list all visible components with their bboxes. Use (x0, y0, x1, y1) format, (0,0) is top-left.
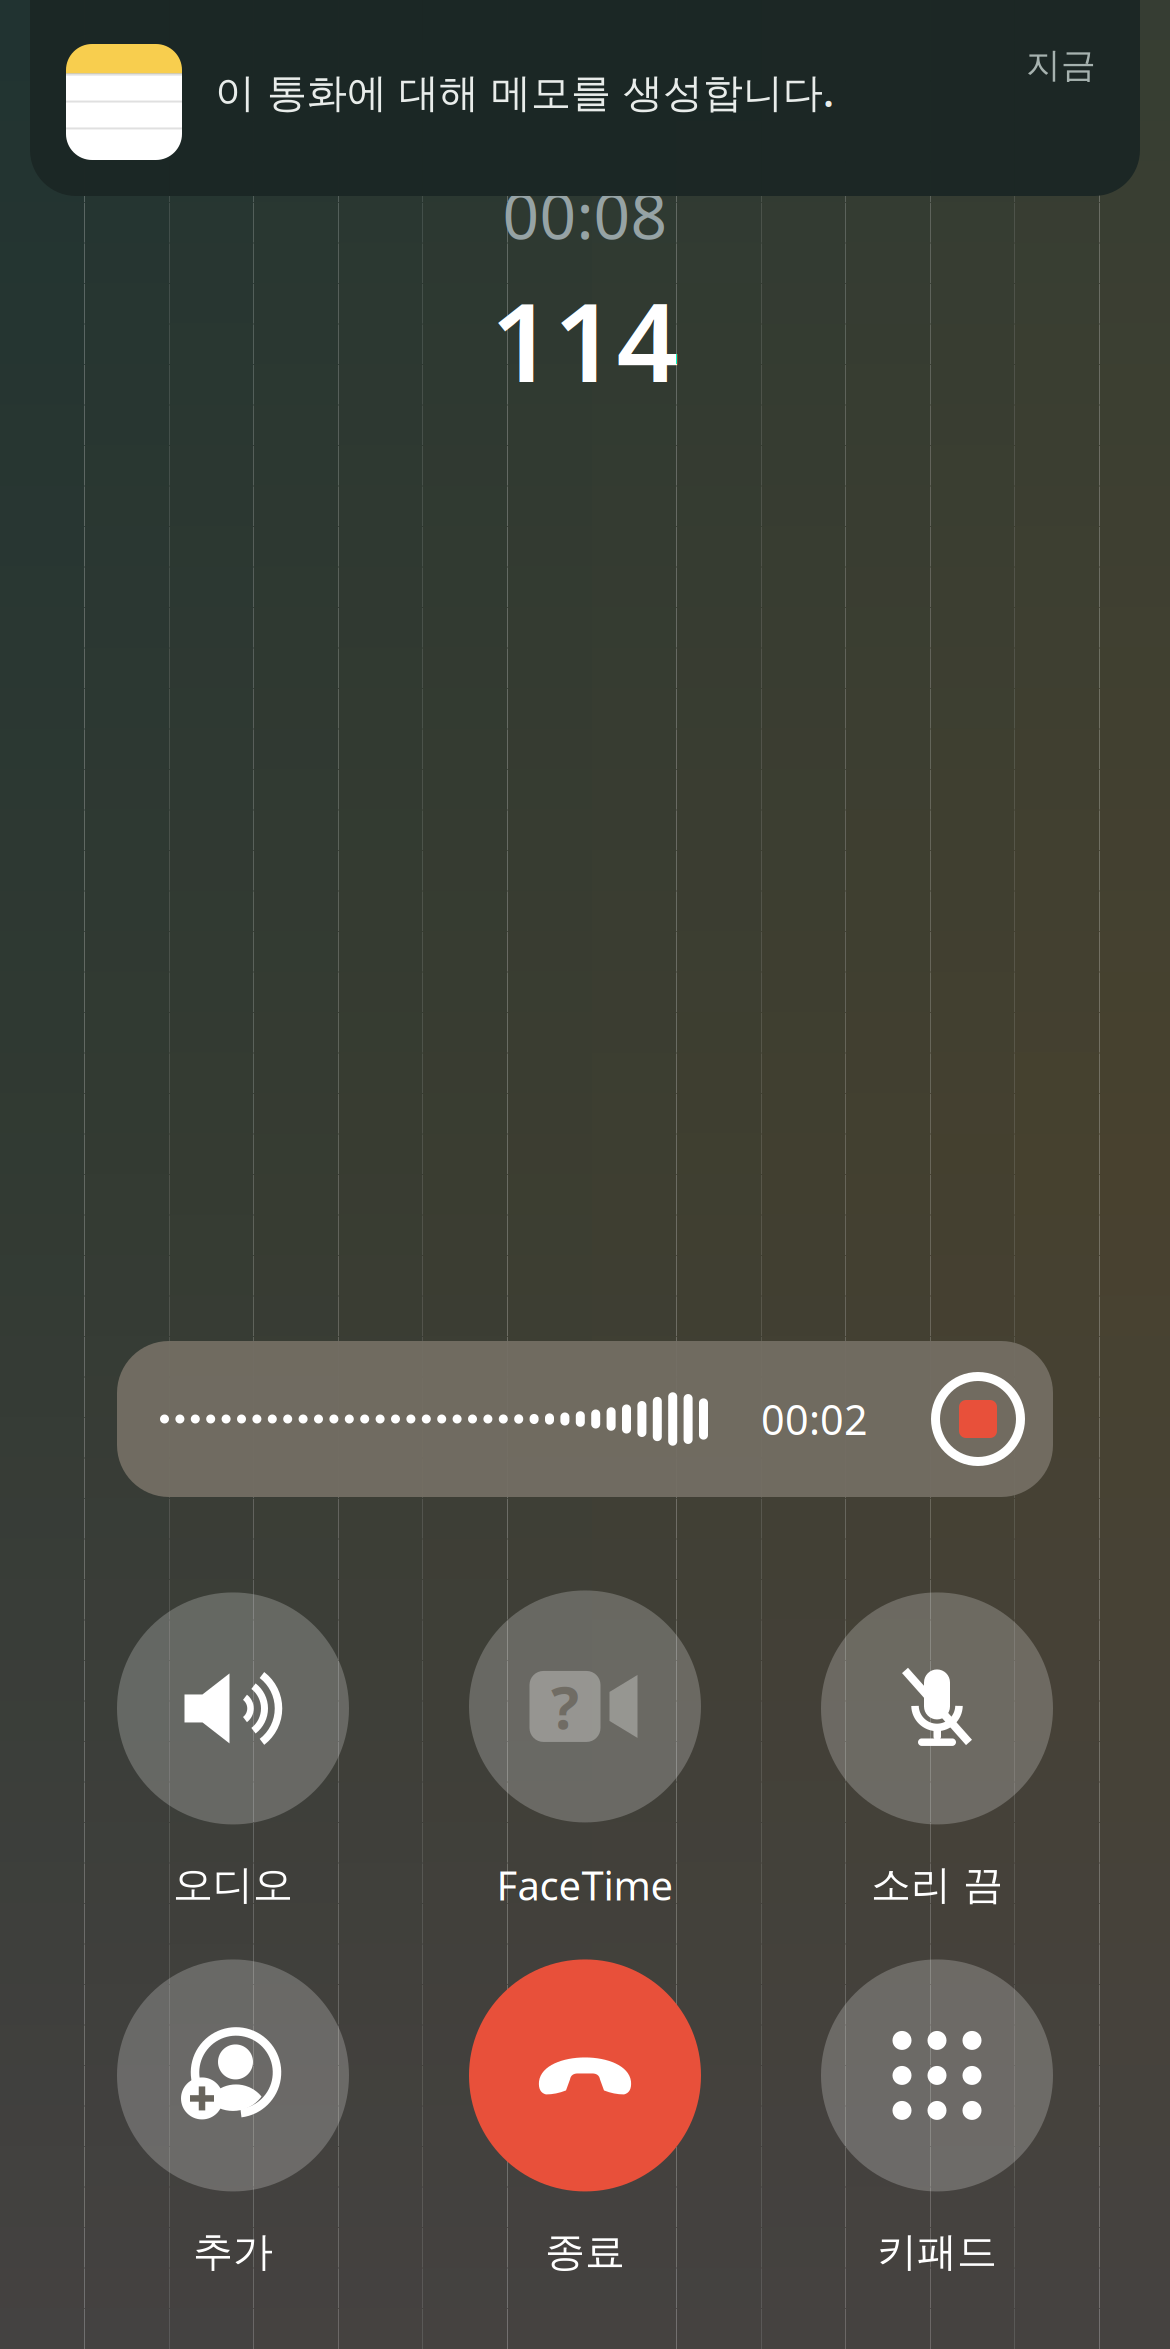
staticText: 종료 (545, 2227, 625, 2276)
staticText: 소리 끔 (871, 1860, 1003, 1909)
staticText: ? (551, 1667, 579, 1745)
staticText: 지금 (1026, 44, 1096, 87)
button[interactable]: 녹음 중지 (930, 1371, 1026, 1467)
button[interactable]: 소리 끔 (761, 1590, 1113, 1912)
staticText: 이 통화에 대해 메모를 생성합니다. (215, 65, 834, 118)
button[interactable]: 이 통화에 대해 메모를 생성합니다. (30, 0, 1140, 196)
staticText: 114 (490, 267, 679, 412)
staticText: 추가 (193, 2227, 273, 2276)
staticText: 00:08 (502, 172, 667, 257)
button[interactable]: ? (409, 1590, 761, 1912)
staticText: 키패드 (877, 2227, 997, 2276)
button[interactable]: 종료 (409, 1957, 761, 2279)
button[interactable]: 오디오 (57, 1590, 409, 1912)
button[interactable]: 키패드 (761, 1957, 1113, 2279)
staticText: 오디오 (173, 1860, 293, 1909)
staticText: FaceTime (496, 1858, 673, 1911)
staticText: 00:02 (761, 1392, 868, 1446)
button[interactable]: 추가 (57, 1957, 409, 2279)
